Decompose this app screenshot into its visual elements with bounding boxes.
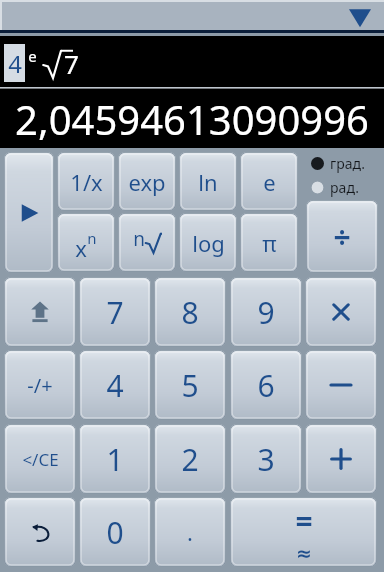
- staticText: n: [133, 226, 145, 252]
- button[interactable]: ln: [179, 152, 237, 211]
- staticText: 1: [106, 439, 124, 480]
- button[interactable]: n: [118, 213, 176, 272]
- button[interactable]: 1/x: [57, 152, 115, 211]
- staticText: 9: [257, 292, 275, 333]
- staticText: 7: [64, 46, 79, 81]
- staticText: ÷: [333, 216, 351, 257]
- button[interactable]: [305, 277, 377, 347]
- button[interactable]: 3: [230, 424, 302, 494]
- staticText: 4: [106, 365, 124, 406]
- staticText: π: [262, 228, 277, 258]
- staticText: 8: [181, 292, 199, 333]
- staticText: 2: [181, 439, 199, 480]
- button[interactable]: [305, 424, 377, 494]
- button[interactable]: град.: [304, 154, 380, 173]
- staticText: x: [75, 233, 87, 263]
- staticText: 2,04594613090996: [0, 92, 384, 146]
- button[interactable]: 4: [79, 350, 151, 420]
- staticText: 7: [106, 292, 124, 333]
- button[interactable]: π: [240, 213, 298, 272]
- staticText: 5: [181, 365, 199, 406]
- staticText: рад.: [330, 178, 359, 197]
- staticText: ln: [198, 167, 218, 197]
- staticText: град.: [330, 154, 365, 173]
- button[interactable]: e: [240, 152, 298, 211]
- button[interactable]: [305, 350, 377, 420]
- button[interactable]: exp: [118, 152, 176, 211]
- button[interactable]: 0: [79, 497, 151, 567]
- staticText: -/+: [27, 372, 53, 399]
- staticText: n: [87, 228, 97, 248]
- button[interactable]: .: [154, 497, 226, 567]
- staticText: log: [192, 228, 225, 258]
- staticText: 0: [106, 512, 124, 553]
- button[interactable]: 2: [154, 424, 226, 494]
- button[interactable]: Open menu: [0, 0, 384, 33]
- button[interactable]: x: [57, 213, 115, 272]
- button[interactable]: log: [179, 213, 237, 272]
- button[interactable]: </CE: [4, 424, 76, 494]
- button[interactable]: 8: [154, 277, 226, 347]
- button[interactable]: 6: [230, 350, 302, 420]
- staticText: e: [263, 167, 276, 197]
- staticText: 1/x: [70, 167, 103, 197]
- button[interactable]: 5: [154, 350, 226, 420]
- staticText: 3: [257, 439, 275, 480]
- button[interactable]: рад.: [304, 178, 380, 197]
- button[interactable]: Undo: [4, 497, 76, 567]
- button[interactable]: More functions: [4, 152, 54, 273]
- staticText: 6: [257, 365, 275, 406]
- button[interactable]: 7: [79, 277, 151, 347]
- staticText: </CE: [22, 448, 59, 471]
- button[interactable]: 1: [79, 424, 151, 494]
- button[interactable]: Memory: [4, 277, 76, 347]
- staticText: exp: [128, 167, 166, 197]
- staticText: =: [295, 500, 313, 541]
- staticText: e: [28, 46, 37, 66]
- button[interactable]: =: [230, 497, 377, 567]
- button[interactable]: 9: [230, 277, 302, 347]
- staticText: ≈: [296, 542, 312, 564]
- button[interactable]: -/+: [4, 350, 76, 420]
- staticText: 4: [8, 47, 22, 80]
- staticText: .: [187, 517, 193, 547]
- button[interactable]: ÷: [306, 200, 378, 273]
